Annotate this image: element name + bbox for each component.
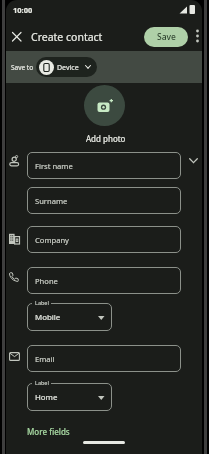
staticText: Home <box>35 392 58 403</box>
button[interactable] <box>194 29 201 43</box>
button[interactable]: Email <box>27 345 181 372</box>
staticText: 10:00 <box>13 5 33 15</box>
button[interactable]: More fields <box>22 424 84 438</box>
button[interactable] <box>12 32 22 42</box>
button[interactable]: Company <box>27 226 181 253</box>
staticText: Device <box>57 63 79 73</box>
staticText: Add photo <box>86 133 126 144</box>
button[interactable]: Home <box>27 383 112 411</box>
button[interactable]: First name <box>27 152 181 179</box>
staticText: First name <box>35 161 73 171</box>
staticText: Mobile <box>35 312 61 323</box>
button[interactable]: Phone <box>27 267 181 294</box>
staticText: Label <box>35 379 49 386</box>
staticText: More fields <box>27 426 70 437</box>
staticText: Email <box>35 354 55 364</box>
button[interactable]: Surname <box>27 187 181 214</box>
button[interactable]: Device <box>36 57 97 77</box>
button[interactable]: Mobile <box>27 303 112 331</box>
button[interactable] <box>189 158 198 164</box>
button[interactable] <box>84 85 125 126</box>
staticText: Phone <box>35 276 58 286</box>
staticText: Label <box>35 299 49 306</box>
button[interactable]: Save <box>144 27 188 47</box>
staticText: Company <box>35 235 69 245</box>
staticText: Save to <box>11 63 34 72</box>
staticText: Create contact <box>31 30 103 44</box>
staticText: Surname <box>35 196 68 206</box>
staticText: Save <box>157 31 176 43</box>
